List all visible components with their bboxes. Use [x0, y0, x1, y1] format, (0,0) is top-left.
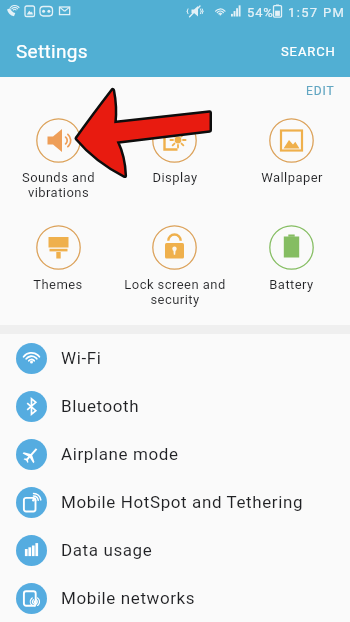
staticText: Settings	[16, 40, 88, 62]
button[interactable]: Data usage	[0, 526, 350, 574]
button[interactable]: Battery	[233, 225, 350, 292]
staticText: Mobile HotSpot and Tethering	[61, 492, 304, 512]
button[interactable]: Lock screen and security	[116, 225, 233, 307]
staticText: 1:57 PM	[288, 5, 346, 20]
staticText: Lock screen and security	[124, 277, 226, 307]
button[interactable]: Mobile networks	[0, 574, 350, 622]
staticText: Themes	[33, 277, 83, 292]
button[interactable]: Themes	[0, 225, 116, 292]
staticText: Data usage	[61, 540, 153, 560]
staticText: 54%	[247, 5, 274, 20]
staticText: Bluetooth	[61, 396, 140, 416]
button[interactable]: Bluetooth	[0, 382, 350, 430]
staticText: EDIT	[306, 84, 335, 98]
staticText: Sounds and vibrations	[22, 170, 95, 200]
button[interactable]: Wallpaper	[233, 118, 350, 185]
staticText: Airplane mode	[61, 444, 179, 464]
button[interactable]: Airplane mode	[0, 430, 350, 478]
staticText: Wi-Fi	[61, 348, 102, 368]
staticText: SEARCH	[281, 44, 336, 59]
button[interactable]: Sounds and vibrations	[0, 118, 116, 200]
staticText: Mobile networks	[61, 588, 196, 608]
staticText: Wallpaper	[261, 170, 323, 185]
staticText: Display	[152, 170, 198, 185]
button[interactable]: SEARCH	[267, 34, 350, 69]
staticText: Battery	[269, 277, 314, 292]
button[interactable]: EDIT	[294, 77, 350, 102]
button[interactable]: Wi-Fi	[0, 334, 350, 382]
button[interactable]: Mobile HotSpot and Tethering	[0, 478, 350, 526]
button[interactable]: Display	[116, 118, 233, 185]
